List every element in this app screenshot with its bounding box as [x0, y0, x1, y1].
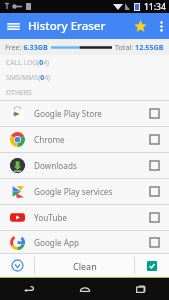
button[interactable]: Google App	[0, 231, 169, 253]
button[interactable]: Google Play services	[0, 179, 169, 204]
staticText: Clean	[73, 260, 97, 272]
button[interactable]: Select YouTube	[139, 205, 169, 230]
staticText: Google Play Store	[34, 108, 139, 119]
staticText: 11:34	[144, 1, 166, 13]
staticText: SMS/MMS(04)	[6, 73, 51, 82]
button[interactable]: Select all	[135, 254, 169, 277]
button[interactable]: Select Google Play Store	[139, 101, 169, 126]
staticText: Google App	[34, 237, 139, 248]
staticText: Free: 6.33GB	[5, 42, 48, 52]
staticText: History Eraser	[28, 18, 127, 34]
button[interactable]: OTHERS	[0, 85, 169, 100]
button[interactable]: Select Google App	[139, 231, 169, 253]
staticText: Chrome	[34, 134, 139, 145]
button[interactable]: Back	[0, 278, 57, 300]
staticText: Google Play services	[34, 186, 139, 197]
button[interactable]: Select Downloads	[139, 153, 169, 178]
button[interactable]: Clean	[35, 254, 134, 277]
staticText: CALL LOG(04)	[6, 58, 50, 67]
staticText: Downloads	[34, 160, 139, 171]
button[interactable]: Chrome	[0, 127, 169, 152]
staticText: Total: 12.55GB	[115, 42, 164, 52]
button[interactable]: More options	[153, 13, 169, 39]
button[interactable]: Downloads	[0, 153, 169, 178]
button[interactable]: Home	[57, 278, 113, 300]
button[interactable]: CALL LOG(04)	[0, 55, 169, 70]
button[interactable]: YouTube	[0, 205, 169, 230]
staticText: YouTube	[34, 212, 139, 223]
button[interactable]: Select Google Play services	[139, 179, 169, 204]
button[interactable]: Recent apps	[113, 278, 169, 300]
button[interactable]: Favorite	[127, 13, 153, 39]
button[interactable]: Google Play Store	[0, 101, 169, 126]
button[interactable]: Open navigation drawer	[0, 13, 26, 39]
staticText: OTHERS	[6, 88, 32, 97]
button[interactable]: SMS/MMS(04)	[0, 70, 169, 85]
button[interactable]: Expand	[0, 254, 34, 277]
button[interactable]: Select Chrome	[139, 127, 169, 152]
